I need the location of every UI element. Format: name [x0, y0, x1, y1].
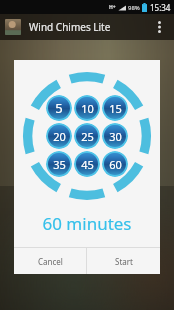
button[interactable]: 25 [74, 123, 100, 149]
staticText: Start [115, 256, 133, 267]
button[interactable]: Start [87, 248, 160, 274]
staticText: Wind Chimes Lite [29, 20, 111, 34]
staticText: 25 [81, 129, 94, 144]
button[interactable]: 5 [46, 95, 72, 121]
staticText: 15:34 [150, 2, 171, 13]
button[interactable]: More options [149, 17, 169, 37]
staticText: 30 [109, 129, 122, 144]
staticText: 98% [128, 4, 140, 12]
staticText: 20 [53, 129, 66, 144]
button[interactable]: 35 [46, 151, 72, 177]
staticText: 45 [81, 157, 94, 172]
staticText: 60 minutes [42, 212, 132, 235]
staticText: Cancel [38, 256, 63, 267]
staticText: 15 [109, 101, 122, 116]
staticText: H+ [109, 4, 116, 11]
button[interactable]: 20 [46, 123, 72, 149]
staticText: 10 [81, 101, 94, 116]
button[interactable]: Cancel [14, 248, 86, 274]
button[interactable]: 10 [74, 95, 100, 121]
button[interactable]: 15 [102, 95, 128, 121]
button[interactable]: 60 [102, 151, 128, 177]
staticText: 5 [55, 99, 63, 117]
button[interactable]: 45 [74, 151, 100, 177]
staticText: 60 [109, 157, 122, 172]
staticText: 35 [53, 157, 66, 172]
button[interactable]: 30 [102, 123, 128, 149]
